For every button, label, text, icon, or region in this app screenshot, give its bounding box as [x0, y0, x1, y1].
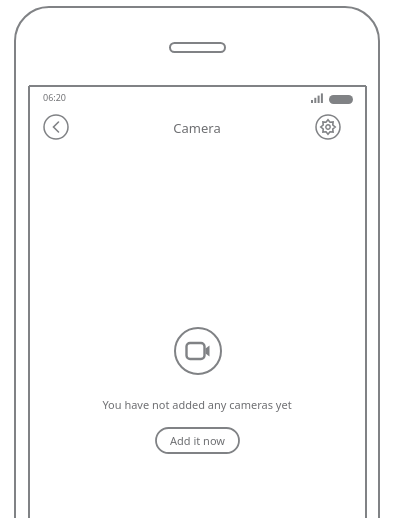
staticText: You have not added any cameras yet — [0, 397, 394, 412]
button[interactable]: Add it now — [155, 427, 240, 454]
staticText: 06:20 — [43, 91, 67, 103]
button[interactable]: Settings — [315, 114, 341, 140]
button[interactable]: Back — [43, 114, 69, 140]
staticText: Add it now — [170, 433, 225, 448]
staticText: Camera — [0, 119, 394, 137]
